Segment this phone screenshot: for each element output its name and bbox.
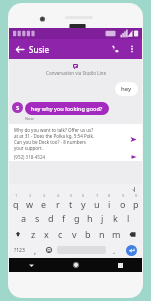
staticText: g (74, 212, 80, 224)
button[interactable]: 8 (103, 193, 116, 210)
staticText: k (113, 212, 118, 224)
button[interactable]: . (108, 242, 121, 258)
button[interactable]: 1 (9, 193, 23, 210)
staticText: r (56, 198, 60, 210)
staticText: 2 (29, 193, 32, 198)
staticText: 1 (15, 193, 18, 198)
button[interactable]: k (109, 210, 122, 226)
button[interactable]: Call (106, 40, 124, 58)
button[interactable]: h (83, 210, 96, 226)
button[interactable]: n (95, 226, 109, 242)
staticText: c (58, 228, 63, 240)
staticText: m (112, 228, 121, 240)
button[interactable]: c (53, 226, 67, 242)
button[interactable]: , (29, 242, 42, 258)
button[interactable]: Back (9, 258, 54, 272)
button[interactable]: Home (54, 258, 98, 272)
staticText: 6 (82, 193, 85, 198)
button[interactable]: 2 (23, 193, 37, 210)
button[interactable]: v (67, 226, 81, 242)
staticText: f (62, 212, 66, 224)
staticText: 8 (108, 193, 111, 198)
staticText: 4 (57, 193, 60, 198)
staticText: a (21, 212, 27, 224)
button[interactable]: 6 (77, 193, 90, 210)
staticText: 5 (70, 193, 73, 198)
button[interactable]: ?123 (9, 242, 29, 258)
staticText: , (34, 245, 37, 256)
staticText: Conversation via Studio Line (46, 70, 106, 76)
button[interactable]: 4 (51, 193, 64, 210)
staticText: y (81, 198, 86, 210)
button[interactable]: Shift (9, 226, 27, 242)
staticText: n (99, 228, 105, 240)
staticText: 9 (122, 193, 125, 198)
button[interactable]: More options (124, 41, 140, 57)
button[interactable]: a (17, 210, 31, 226)
staticText: e (41, 198, 47, 210)
staticText: hey why you looking good? (31, 105, 103, 112)
button[interactable]: hey (115, 82, 138, 96)
staticText: d (48, 212, 54, 224)
button[interactable]: 0 (129, 193, 142, 210)
button[interactable]: z (27, 226, 40, 242)
staticText: S (16, 104, 20, 112)
staticText: l (127, 212, 130, 224)
button[interactable]: Emoji (42, 242, 55, 258)
button[interactable]: 5 (64, 193, 77, 210)
staticText: j (101, 212, 104, 224)
button[interactable]: Recent apps (98, 258, 142, 272)
staticText: b (85, 228, 91, 240)
button[interactable]: m (109, 226, 123, 242)
staticText: 0 (135, 193, 138, 198)
staticText: s (35, 212, 40, 224)
button[interactable]: x (40, 226, 53, 242)
button[interactable]: f (57, 210, 70, 226)
staticText: p (133, 198, 139, 210)
staticText: Why do you want to talk? Offer us us? at… (14, 127, 95, 151)
staticText: Susie (29, 44, 106, 55)
button[interactable]: 3 (37, 193, 51, 210)
button[interactable]: d (44, 210, 57, 226)
button[interactable]: s (31, 210, 44, 226)
staticText: . (113, 245, 116, 256)
button[interactable]: Back (9, 39, 29, 59)
button[interactable]: j (96, 210, 109, 226)
staticText: 7 (96, 193, 99, 198)
staticText: h (87, 212, 93, 224)
staticText: t (69, 198, 73, 210)
button[interactable]: 9 (116, 193, 129, 210)
staticText: (952) 318-4524 (14, 154, 46, 160)
button[interactable]: Voice input (130, 185, 138, 193)
staticText: w (26, 198, 34, 210)
staticText: ?123 (14, 247, 25, 254)
staticText: o (120, 198, 126, 210)
button[interactable]: Send (127, 133, 139, 145)
button[interactable]: l (122, 210, 135, 226)
staticText: z (31, 228, 36, 240)
staticText: v (72, 228, 77, 240)
button[interactable]: Enter (121, 242, 142, 258)
staticText: q (13, 198, 19, 210)
staticText: u (94, 198, 100, 210)
staticText: x (44, 228, 49, 240)
staticText: i (108, 198, 111, 210)
staticText: 3 (43, 193, 46, 198)
staticText: Now (25, 116, 34, 121)
button[interactable]: hey why you looking good? (25, 102, 109, 115)
button[interactable]: 7 (90, 193, 103, 210)
button[interactable]: g (70, 210, 83, 226)
staticText: hey (121, 85, 132, 93)
button[interactable]: Backspace (123, 226, 142, 242)
button[interactable]: b (81, 226, 95, 242)
